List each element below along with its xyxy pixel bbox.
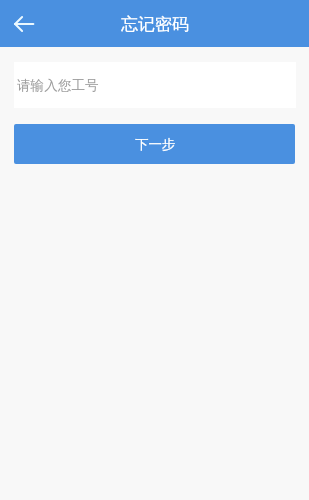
button[interactable]: Back	[5, 5, 43, 43]
button[interactable]: 请输入您工号	[14, 62, 296, 108]
staticText: 请输入您工号	[17, 77, 99, 94]
staticText: 忘记密码	[121, 14, 189, 35]
button[interactable]: 下一步	[14, 124, 295, 164]
staticText: 下一步	[135, 136, 176, 153]
